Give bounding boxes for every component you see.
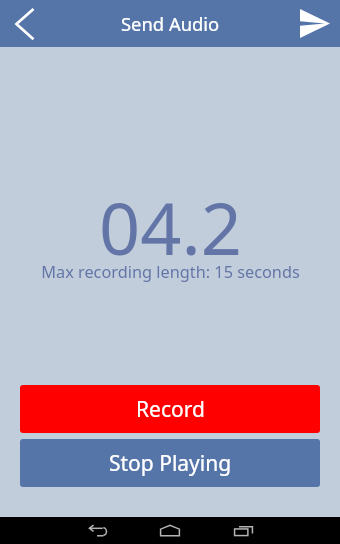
button[interactable]: Stop Playing <box>20 439 320 487</box>
button[interactable]: Record <box>20 385 320 433</box>
button[interactable]: Back <box>78 517 118 544</box>
button[interactable]: Home <box>150 517 190 544</box>
staticText: Stop Playing <box>109 449 232 478</box>
staticText: 04.2 <box>99 178 242 276</box>
button[interactable]: Recent apps <box>223 517 263 544</box>
button[interactable]: Back <box>0 0 48 47</box>
staticText: Record <box>136 395 205 424</box>
button[interactable]: Send <box>292 0 340 47</box>
staticText: Max recording length: 15 seconds <box>41 261 300 283</box>
staticText: Send Audio <box>121 11 220 36</box>
